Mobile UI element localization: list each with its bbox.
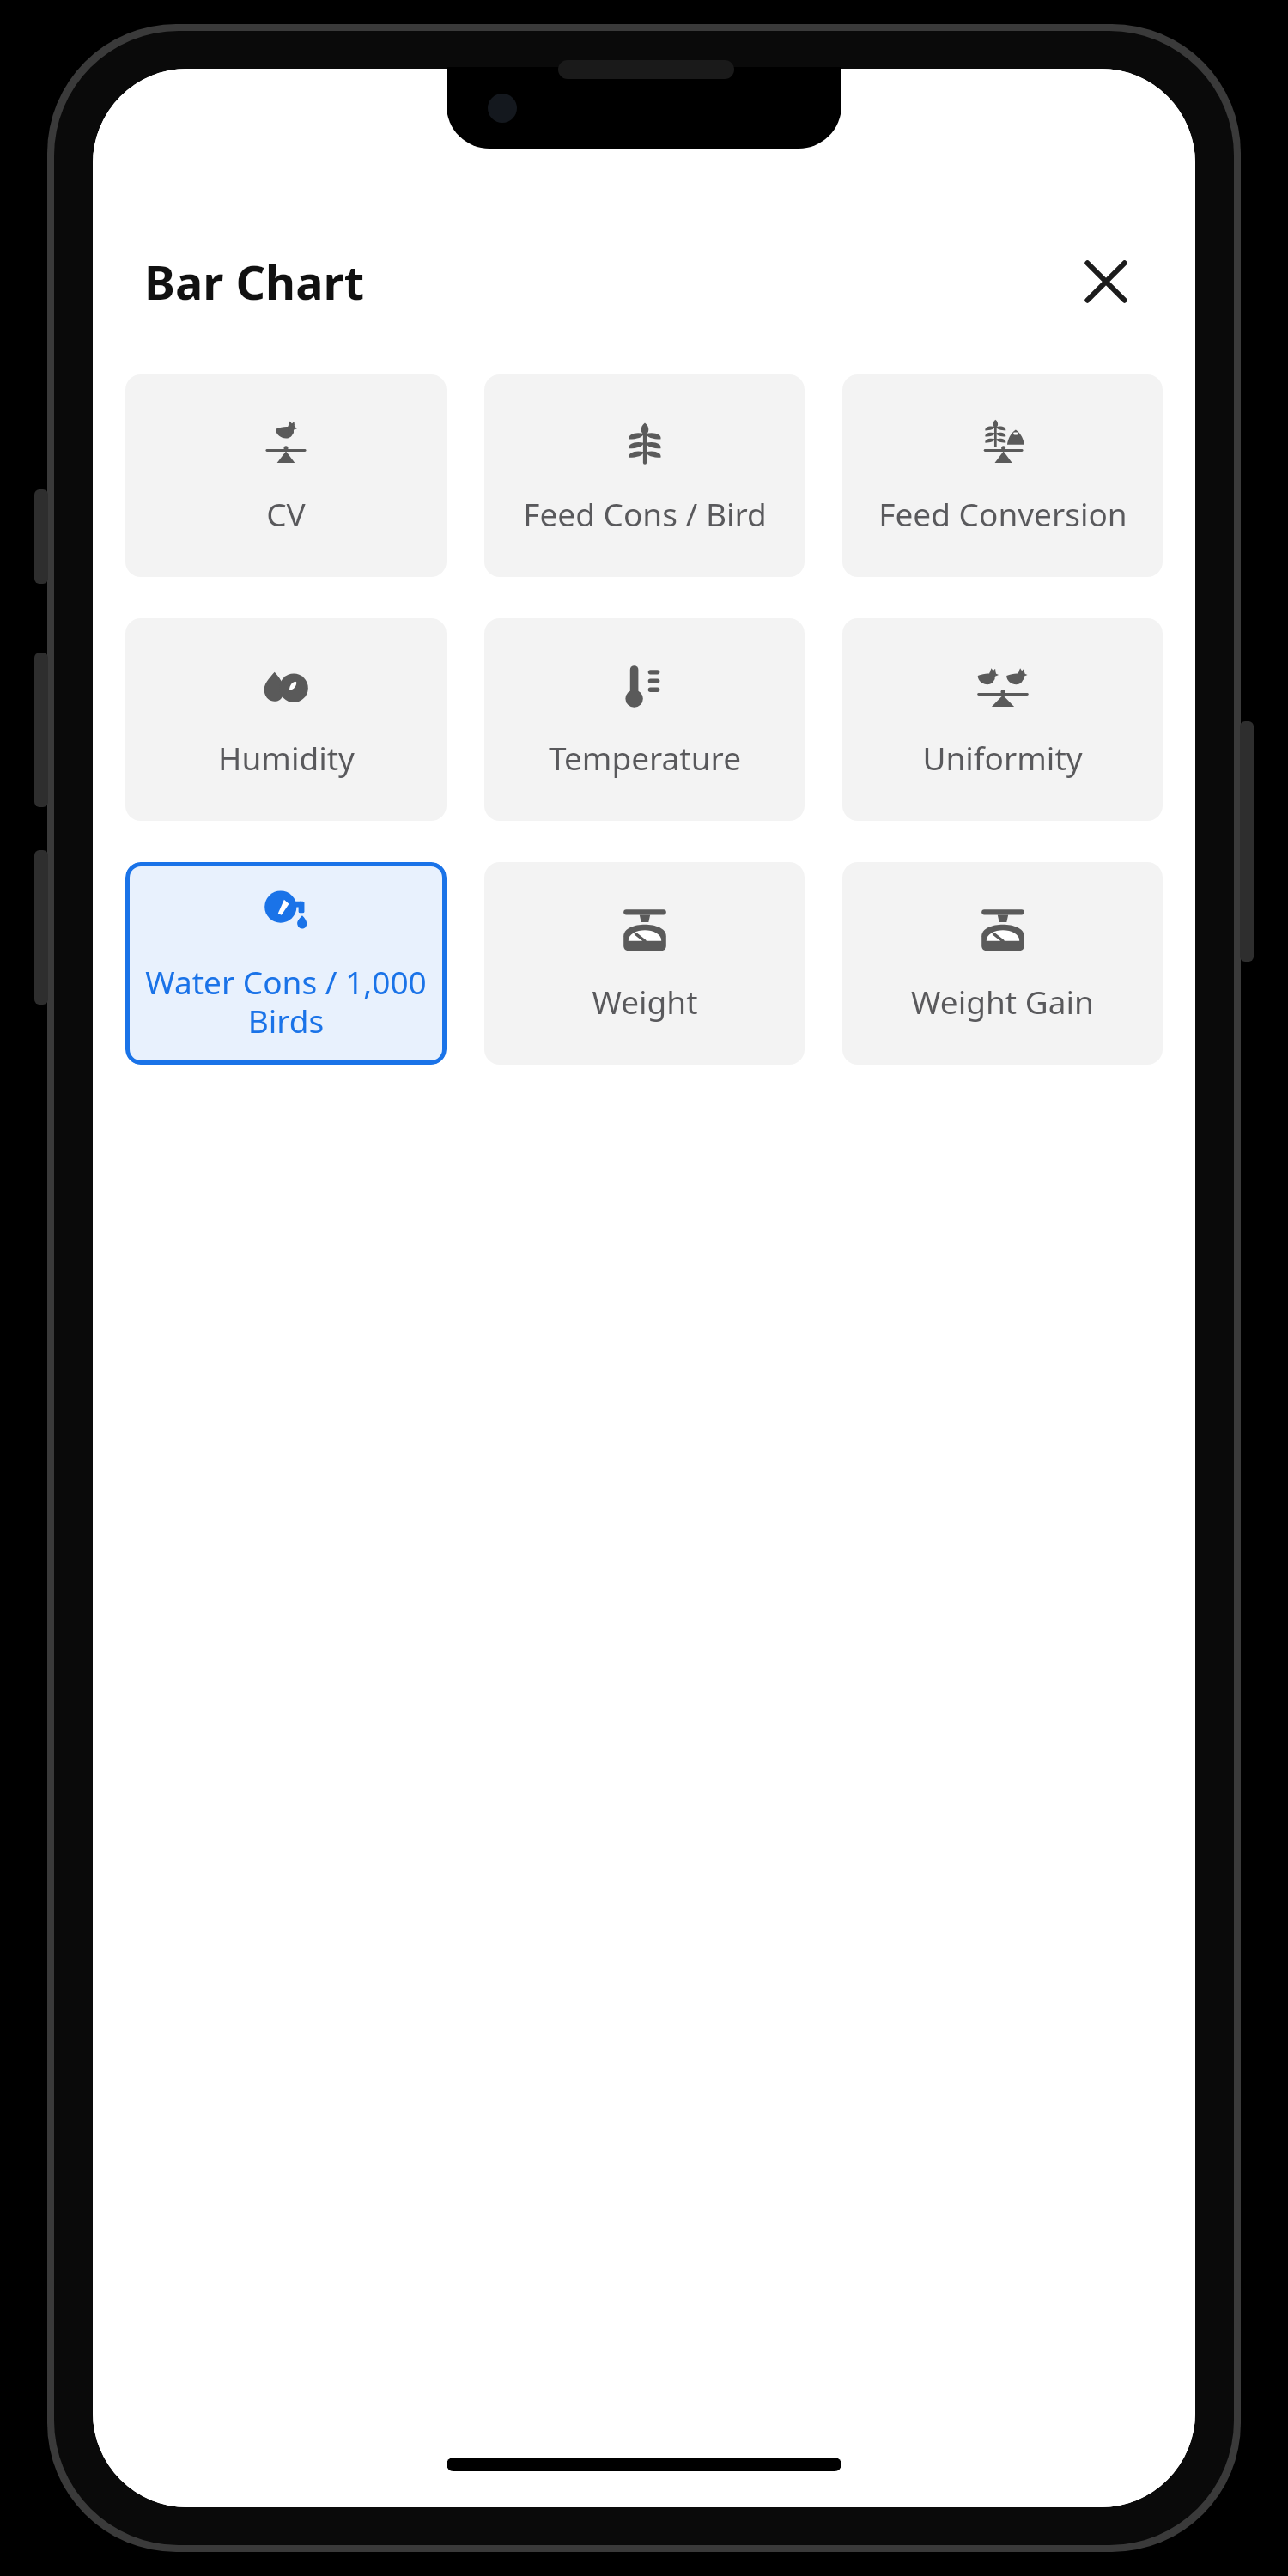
staticText: Bar Chart: [144, 250, 365, 313]
staticText: Humidity: [218, 736, 355, 779]
staticText: Water Cons / 1,000 Birds: [137, 960, 434, 1042]
button[interactable]: Feed Conversion: [842, 374, 1163, 577]
button[interactable]: Water Cons / 1,000 Birds: [125, 862, 447, 1065]
staticText: Weight Gain: [911, 980, 1094, 1023]
button[interactable]: CV: [125, 374, 447, 577]
staticText: Feed Conversion: [878, 492, 1127, 535]
staticText: Feed Cons / Bird: [523, 492, 767, 535]
staticText: Weight: [592, 980, 698, 1023]
button[interactable]: Weight Gain: [842, 862, 1163, 1065]
button[interactable]: Uniformity: [842, 618, 1163, 821]
button[interactable]: Weight: [484, 862, 805, 1065]
staticText: CV: [266, 492, 306, 535]
staticText: Temperature: [549, 736, 741, 779]
staticText: Uniformity: [922, 736, 1083, 779]
button[interactable]: Close: [1065, 240, 1147, 323]
button[interactable]: Humidity: [125, 618, 447, 821]
button[interactable]: Feed Cons / Bird: [484, 374, 805, 577]
button[interactable]: Temperature: [484, 618, 805, 821]
